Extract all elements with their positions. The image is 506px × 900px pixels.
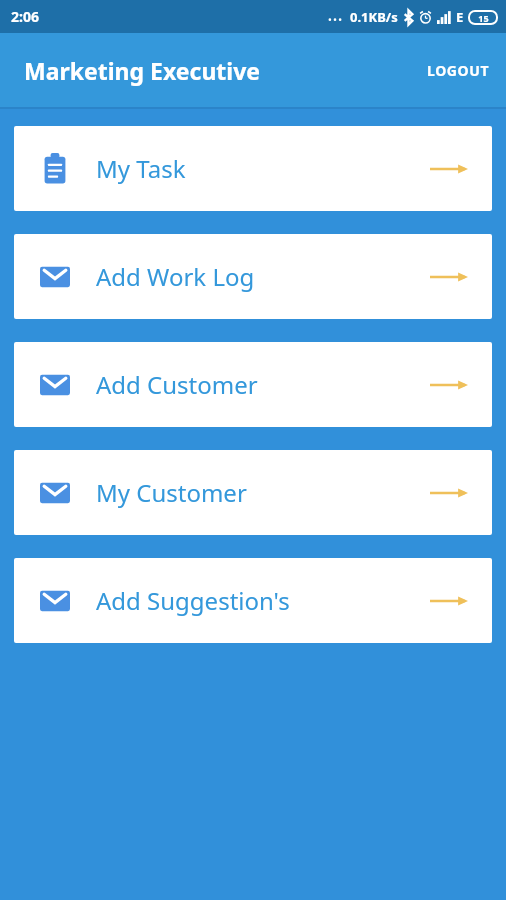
button[interactable]: Add Suggestion's [14,558,492,643]
staticText: E [456,8,464,26]
staticText: 2:06 [11,7,39,26]
button[interactable]: My Customer [14,450,492,535]
button[interactable]: My Task [14,126,492,211]
button[interactable]: Add Work Log [14,234,492,319]
staticText: LOGOUT [427,61,490,80]
staticText: 0.1KB/s [350,8,398,26]
button[interactable]: Add Customer [14,342,492,427]
staticText: Add Customer [96,368,258,401]
staticText: My Task [96,152,186,185]
staticText: Add Work Log [96,260,255,293]
button[interactable]: LOGOUT [411,51,506,90]
staticText: Marketing Executive [24,55,261,86]
staticText: 15 [478,12,489,23]
staticText: My Customer [96,476,247,509]
staticText: Add Suggestion's [96,584,290,617]
